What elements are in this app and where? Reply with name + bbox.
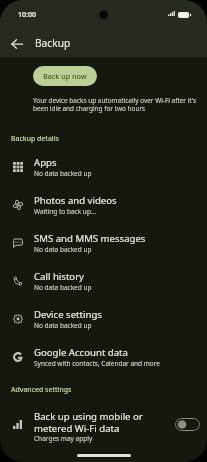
staticText: Call history [34, 270, 85, 283]
staticText: No data backed up [34, 283, 92, 292]
button[interactable]: Google Account data [0, 338, 207, 376]
button[interactable]: Apps [0, 148, 207, 186]
button[interactable]: Back up using mobile or metered Wi-Fi da… [0, 401, 207, 451]
staticText: 10:00 [18, 10, 36, 20]
staticText: Apps [34, 156, 57, 169]
button[interactable]: Back [5, 32, 28, 55]
button[interactable]: Photos and videos [0, 186, 207, 224]
button[interactable]: Toggle back up using mobile or metered W… [175, 418, 200, 431]
staticText: Google Account data [34, 346, 128, 359]
staticText: SMS and MMS messages [34, 232, 146, 245]
button[interactable]: Device settings [0, 300, 207, 338]
staticText: Your device backs up automatically over … [33, 96, 203, 113]
staticText: Advanced settings [11, 385, 72, 394]
staticText: Charges may apply [34, 434, 93, 443]
staticText: Backup [35, 36, 71, 50]
staticText: Photos and videos [34, 194, 117, 207]
staticText: No data backed up [34, 245, 92, 254]
button[interactable]: SMS and MMS messages [0, 224, 207, 262]
staticText: Waiting to back up... [34, 207, 97, 216]
button[interactable]: Back up now [33, 66, 97, 86]
staticText: Device settings [34, 308, 102, 321]
staticText: Back up using mobile or metered Wi-Fi da… [34, 410, 146, 435]
staticText: Synced with contacts, Calendar and more [34, 359, 161, 368]
staticText: Backup details [11, 134, 59, 143]
staticText: No data backed up [34, 169, 92, 178]
button[interactable]: Call history [0, 262, 207, 300]
staticText: No data backed up [34, 321, 92, 330]
staticText: Back up now [43, 71, 87, 81]
